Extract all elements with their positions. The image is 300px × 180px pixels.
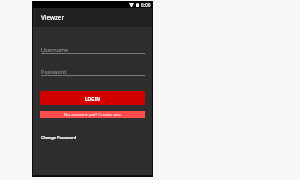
staticText: Username bbox=[41, 46, 69, 54]
button[interactable]: Change Password bbox=[41, 132, 77, 140]
staticText: 6:00 bbox=[141, 2, 151, 9]
other: Wi-Fi connected bbox=[129, 3, 134, 7]
button[interactable]: LOGIN bbox=[40, 91, 145, 105]
button[interactable]: Username bbox=[41, 45, 145, 54]
button[interactable]: Password bbox=[41, 67, 145, 76]
other: Battery full bbox=[136, 3, 139, 7]
staticText: No account yet? Create one bbox=[64, 111, 122, 117]
button[interactable]: No account yet? Create one bbox=[40, 111, 145, 118]
staticText: LOGIN bbox=[85, 96, 100, 102]
staticText: Password bbox=[41, 68, 67, 76]
staticText: Viewzer bbox=[41, 13, 65, 21]
staticText: Change Password bbox=[41, 135, 77, 140]
